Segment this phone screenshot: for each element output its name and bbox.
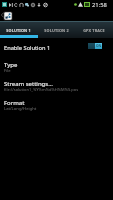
button[interactable]: GPX TRACE [75, 21, 113, 38]
staticText: 21:58 [92, 1, 107, 9]
staticText: Lat/Long/Height [4, 106, 37, 112]
staticText: SOLUTION 2 [44, 28, 69, 33]
staticText: GPX TRACE [83, 28, 105, 33]
staticText: file://solution1_%Y%m%d%H%M%S.pos [4, 87, 79, 92]
staticText: ON [96, 44, 102, 48]
button[interactable]: Type [0, 58, 113, 77]
staticText: SOLUTION 1 [6, 28, 31, 33]
staticText: Type [4, 61, 18, 69]
staticText: Enable Solution 1 [4, 44, 51, 52]
button[interactable]: Stream settings... [0, 77, 113, 96]
button[interactable]: Format [0, 96, 113, 115]
button[interactable]: Navigate up [0, 9, 14, 21]
staticText: Format [4, 99, 25, 107]
button[interactable]: SOLUTION 2 [37, 21, 75, 38]
button[interactable]: Enable Solution 1 [0, 42, 113, 56]
staticText: File [4, 68, 11, 74]
staticText: Stream settings... [4, 80, 53, 88]
button[interactable]: Enable Solution 1 [88, 43, 102, 49]
button[interactable]: SOLUTION 1 [0, 21, 37, 38]
